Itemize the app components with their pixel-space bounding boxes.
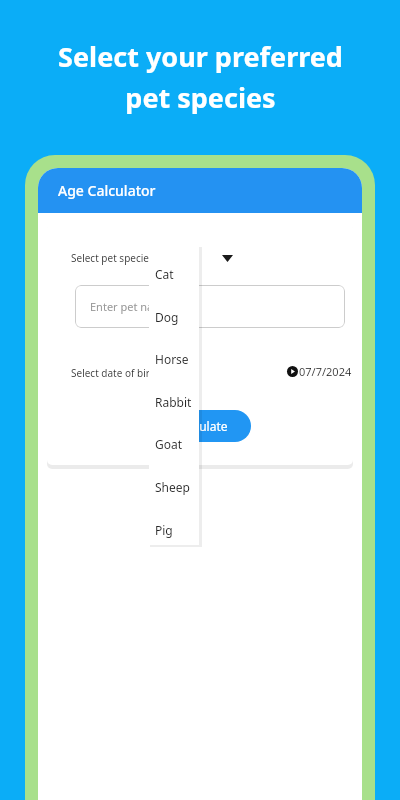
- button[interactable]: Select pet species:: [71, 250, 234, 266]
- staticText: Rabbit: [155, 394, 192, 410]
- button[interactable]: Pick date: [287, 364, 352, 379]
- staticText: 07/7/2024: [299, 364, 352, 379]
- other: Pick date: [287, 366, 298, 377]
- button[interactable]: Calculate: [152, 410, 251, 442]
- button[interactable]: Sheep: [149, 466, 199, 508]
- button[interactable]: Enter pet name: [75, 285, 345, 328]
- staticText: Horse: [155, 351, 189, 367]
- staticText: Select date of birth: [71, 366, 160, 380]
- staticText: Goat: [155, 436, 183, 452]
- button[interactable]: Rabbit: [149, 381, 199, 423]
- staticText: Calculate: [176, 418, 228, 434]
- staticText: Cat: [155, 266, 174, 282]
- staticText: Pig: [155, 522, 173, 538]
- staticText: Dog: [155, 309, 179, 325]
- button[interactable]: Dog: [149, 296, 199, 338]
- button[interactable]: Horse: [149, 338, 199, 380]
- button[interactable]: Pig: [149, 509, 199, 551]
- staticText: Age Calculator: [58, 181, 156, 200]
- staticText: Select pet species:: [71, 251, 157, 265]
- staticText: pet species: [125, 79, 276, 116]
- button[interactable]: Goat: [149, 423, 199, 465]
- staticText: Enter pet name: [90, 299, 170, 314]
- staticText: Sheep: [155, 479, 190, 495]
- other: Open species dropdown: [220, 251, 234, 265]
- staticText: Select your preferred: [58, 38, 343, 75]
- button[interactable]: Cat: [149, 253, 199, 295]
